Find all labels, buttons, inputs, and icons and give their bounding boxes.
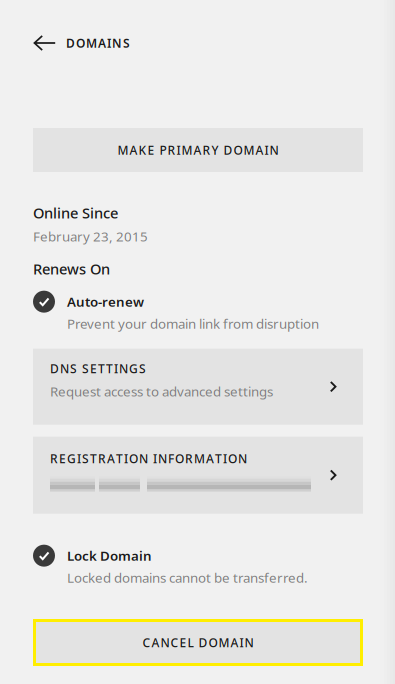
staticText: R E G I S T R A T I O N I N F O R M A T … bbox=[50, 451, 247, 467]
staticText: Prevent your domain link from disruption bbox=[67, 315, 319, 332]
button[interactable]: D N S S E T T I N G S bbox=[33, 349, 363, 425]
staticText: February 23, 2015 bbox=[33, 227, 148, 245]
button[interactable]: R E G I S T R A T I O N I N F O R M A T … bbox=[33, 437, 363, 514]
button[interactable]: Auto-renew bbox=[33, 291, 363, 335]
staticText: Lock Domain bbox=[67, 547, 152, 564]
staticText: Auto-renew bbox=[67, 293, 144, 310]
staticText: Online Since bbox=[33, 203, 118, 222]
staticText: C A N C E L D O M A I N bbox=[142, 634, 253, 650]
button[interactable]: Lock Domain bbox=[33, 545, 363, 589]
staticText: Locked domains cannot be transferred. bbox=[67, 569, 308, 586]
staticText: D N S S E T T I N G S bbox=[50, 361, 146, 377]
staticText: M A K E P R I M A R Y D O M A I N bbox=[117, 142, 278, 158]
button[interactable]: C A N C E L D O M A I N bbox=[33, 619, 363, 666]
button[interactable]: M A K E P R I M A R Y D O M A I N bbox=[33, 128, 363, 172]
staticText: Renews On bbox=[33, 259, 110, 279]
staticText: Request access to advanced settings bbox=[50, 383, 273, 400]
button[interactable]: D O M A I N S bbox=[33, 33, 363, 53]
staticText: D O M A I N S bbox=[66, 35, 130, 51]
